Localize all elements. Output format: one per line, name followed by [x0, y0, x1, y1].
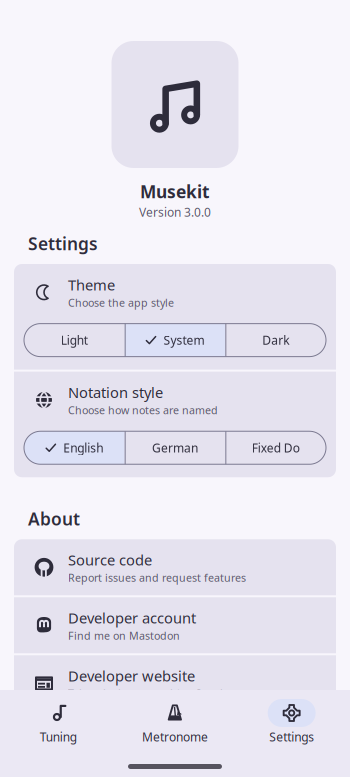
staticText: Developer account: [68, 608, 196, 627]
staticText: Notation style: [68, 383, 163, 402]
staticText: System: [163, 332, 204, 348]
button[interactable]: Developer account: [14, 597, 336, 653]
staticText: Fixed Do: [252, 440, 300, 456]
staticText: Musekit: [140, 180, 210, 203]
button[interactable]: Fixed Do: [225, 431, 326, 464]
staticText: Take a look at everything I make: [68, 686, 232, 701]
button[interactable]: Metronome: [117, 699, 233, 745]
staticText: Developer website: [68, 666, 195, 685]
button[interactable]: German: [125, 431, 225, 464]
staticText: About: [28, 507, 80, 530]
button[interactable]: Source code: [14, 539, 336, 595]
staticText: Metronome: [142, 729, 208, 745]
button[interactable]: English: [24, 431, 125, 464]
staticText: Settings: [28, 232, 98, 255]
staticText: Settings: [269, 729, 314, 745]
staticText: Dark: [262, 332, 289, 348]
staticText: Tuning: [40, 729, 77, 745]
staticText: Source code: [68, 550, 152, 569]
staticText: Theme: [68, 275, 115, 294]
button[interactable]: System: [125, 324, 225, 357]
staticText: Choose the app style: [68, 295, 174, 310]
staticText: Version 3.0.0: [139, 204, 211, 220]
staticText: Find me on Mastodon: [68, 628, 180, 643]
button[interactable]: Developer website: [14, 655, 336, 711]
button[interactable]: Dark: [225, 324, 326, 357]
staticText: German: [152, 440, 198, 456]
staticText: Report issues and request features: [68, 570, 246, 585]
button[interactable]: Tuning: [0, 699, 117, 745]
staticText: English: [63, 440, 103, 456]
button[interactable]: Settings: [233, 699, 350, 745]
button[interactable]: Light: [24, 324, 125, 357]
staticText: Choose how notes are named: [68, 403, 218, 417]
staticText: Light: [61, 332, 88, 348]
